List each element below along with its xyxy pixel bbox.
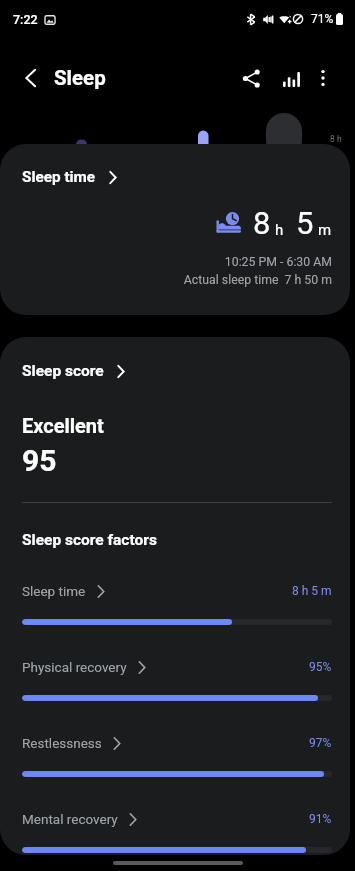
staticText: h bbox=[275, 221, 284, 239]
staticText: Sleep bbox=[54, 66, 106, 90]
staticText: Sleep time bbox=[22, 583, 86, 599]
staticText: m bbox=[318, 221, 332, 239]
staticText: 95 bbox=[22, 443, 57, 478]
staticText: 95% bbox=[309, 660, 332, 674]
staticText: 10:25 PM - 6:30 AM bbox=[22, 255, 332, 269]
staticText: Sleep time bbox=[22, 168, 96, 186]
button[interactable]: Mental recovery bbox=[22, 811, 332, 853]
button[interactable]: More options bbox=[306, 61, 340, 95]
staticText: 97% bbox=[309, 736, 332, 750]
staticText: 7:22 bbox=[13, 12, 38, 27]
staticText: Sleep score bbox=[22, 362, 104, 380]
staticText: 8 bbox=[253, 205, 271, 241]
button[interactable]: Sleep time bbox=[0, 144, 350, 315]
staticText: Actual sleep time 7 h 50 m bbox=[22, 273, 332, 287]
staticText: 5 bbox=[296, 205, 314, 241]
staticText: Sleep score factors bbox=[22, 531, 157, 549]
button[interactable]: Restlessness bbox=[22, 735, 332, 777]
staticText: Physical recovery bbox=[22, 659, 127, 675]
staticText: 71% bbox=[311, 12, 334, 26]
button[interactable]: Sleep score bbox=[22, 362, 125, 380]
staticText: 91% bbox=[309, 812, 332, 826]
button[interactable]: Share bbox=[232, 59, 270, 97]
button[interactable]: Physical recovery bbox=[22, 659, 332, 701]
button[interactable]: Navigate up bbox=[6, 54, 54, 102]
button[interactable]: Statistics bbox=[271, 59, 309, 97]
button[interactable]: Sleep time bbox=[22, 583, 332, 625]
staticText: Mental recovery bbox=[22, 811, 118, 827]
staticText: Excellent bbox=[22, 414, 104, 437]
staticText: 8 h 5 m bbox=[292, 584, 332, 598]
staticText: 8 h bbox=[330, 134, 342, 144]
staticText: Restlessness bbox=[22, 735, 102, 751]
